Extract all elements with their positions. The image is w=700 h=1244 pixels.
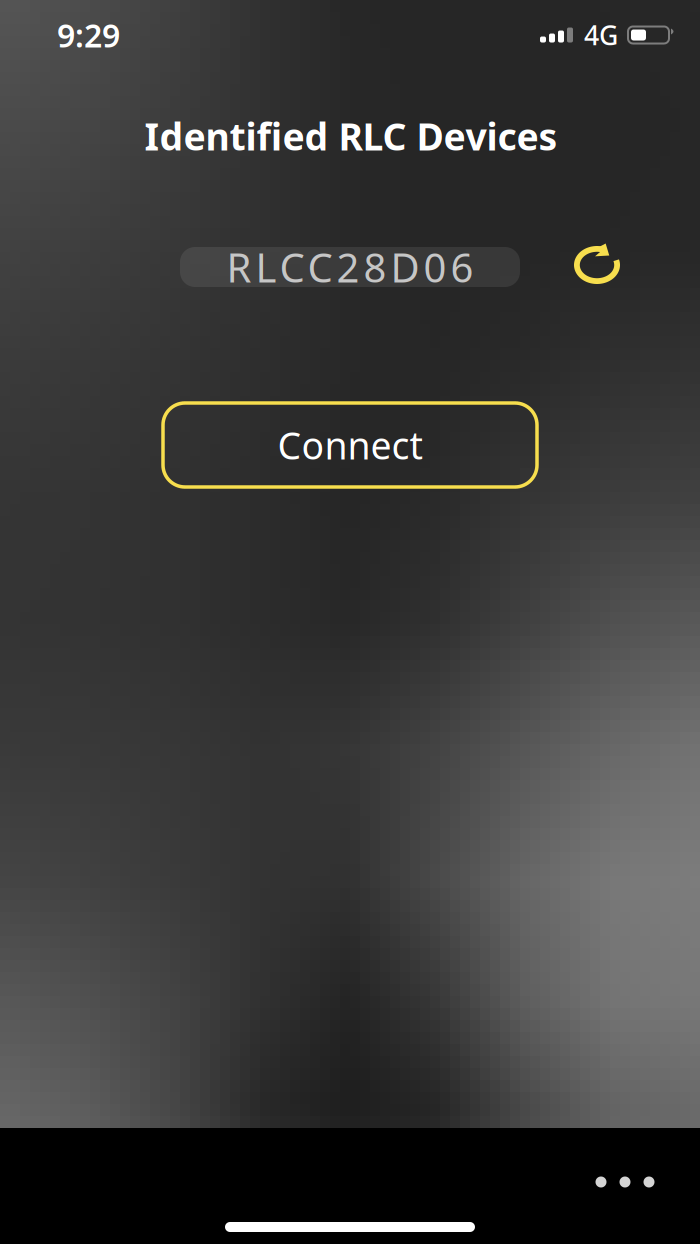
staticText: Connect xyxy=(277,420,422,470)
staticText: 4G xyxy=(584,17,618,53)
staticText: Identified RLC Devices xyxy=(144,111,557,161)
staticText: RLCC28D06 xyxy=(226,240,473,293)
button[interactable]: Connect xyxy=(163,403,537,487)
button[interactable]: Refresh xyxy=(560,230,634,300)
staticText: 9:29 xyxy=(57,14,120,56)
